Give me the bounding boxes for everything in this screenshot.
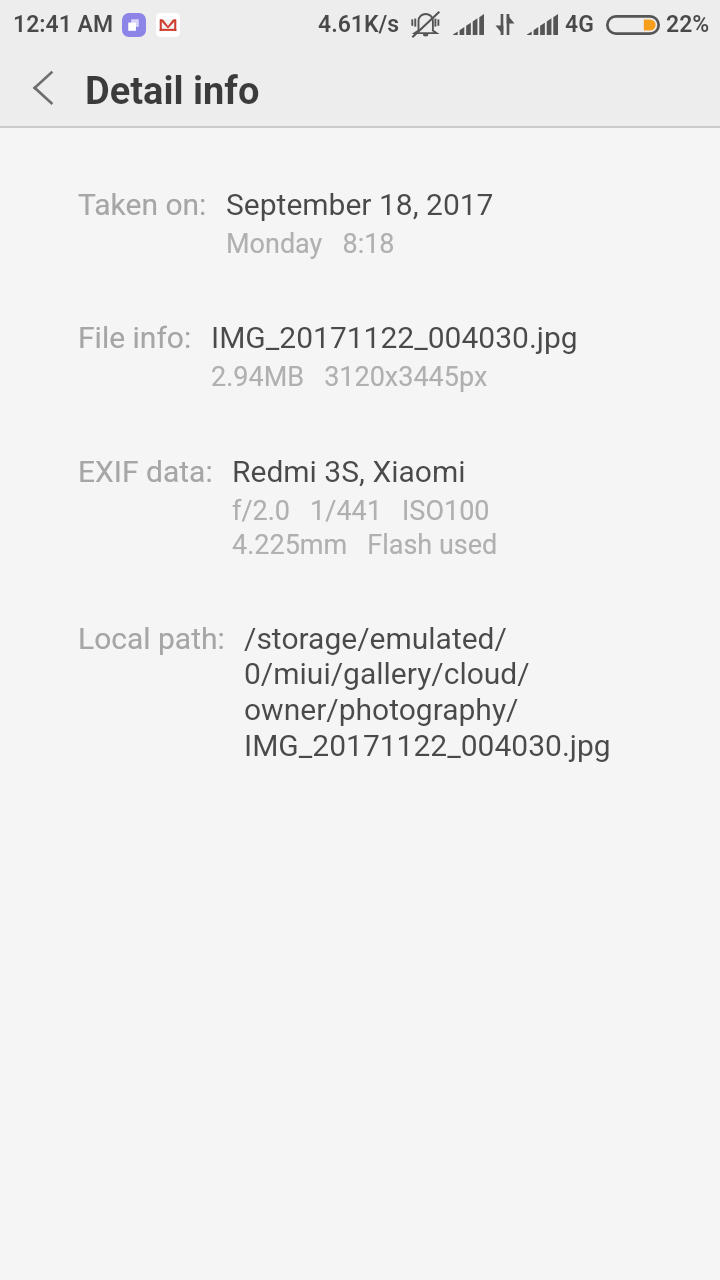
button[interactable]: File info:: [0, 320, 720, 393]
staticText: /storage/emulated/ 0/miui/gallery/cloud/…: [244, 621, 611, 764]
staticText: 2.94MB 3120x3445px: [211, 361, 488, 393]
staticText: Monday 8:18: [226, 228, 395, 260]
staticText: 12:41 AM: [13, 11, 114, 38]
staticText: 4G: [565, 11, 594, 38]
button[interactable]: Back: [0, 56, 86, 128]
staticText: f/2.0 1/441 ISO100 4.225mm Flash used: [232, 495, 498, 561]
button[interactable]: EXIF data:: [0, 454, 720, 561]
staticText: EXIF data:: [78, 454, 213, 489]
staticText: 22%: [666, 11, 710, 38]
staticText: IMG_20171122_004030.jpg: [211, 320, 578, 355]
button[interactable]: Taken on:: [0, 187, 720, 260]
staticText: 4.61K/s: [318, 11, 400, 38]
staticText: File info:: [78, 320, 192, 355]
staticText: Detail info: [85, 69, 260, 114]
staticText: Local path:: [78, 621, 225, 656]
staticText: Redmi 3S, Xiaomi: [232, 454, 466, 489]
button[interactable]: Local path:: [0, 621, 720, 764]
staticText: Taken on:: [78, 187, 207, 222]
staticText: September 18, 2017: [226, 187, 494, 222]
